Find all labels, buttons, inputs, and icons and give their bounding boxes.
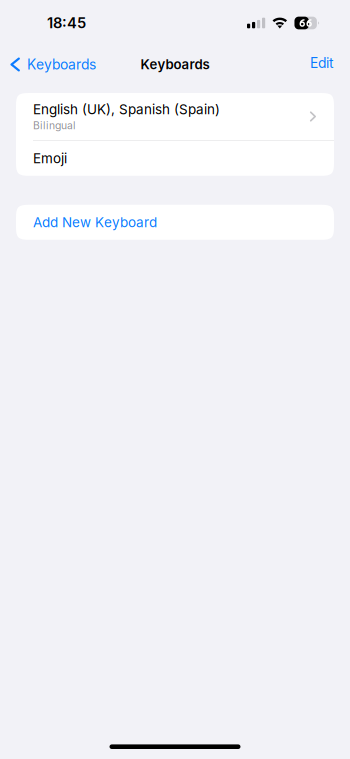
staticText: Bilingual — [33, 119, 76, 132]
staticText: Add New Keyboard — [33, 214, 157, 230]
staticText: 18:45 — [47, 14, 86, 32]
button[interactable]: English (UK), Spanish (Spain) — [16, 93, 334, 140]
staticText: Edit — [310, 55, 334, 71]
staticText: Keyboards — [140, 56, 209, 72]
button[interactable]: Add New Keyboard — [16, 205, 334, 240]
staticText: English (UK), Spanish (Spain) — [33, 101, 220, 118]
staticText: Keyboards — [27, 56, 96, 73]
button[interactable]: Emoji — [16, 141, 334, 176]
staticText: Emoji — [33, 150, 67, 166]
button[interactable]: Edit — [296, 48, 350, 81]
button[interactable]: Keyboards — [0, 48, 104, 81]
